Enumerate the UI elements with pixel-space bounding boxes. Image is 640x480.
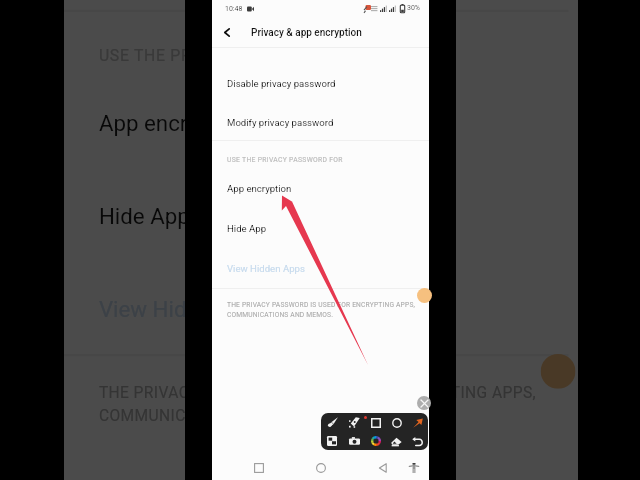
- button[interactable]: Hide App: [212, 208, 429, 248]
- button[interactable]: View Hidden Apps: [212, 248, 429, 288]
- button[interactable]: App encryption: [64, 75, 568, 168]
- button[interactable]: Recents: [254, 463, 264, 473]
- button[interactable]: Back: [214, 18, 240, 47]
- button[interactable]: Screenshot: [343, 432, 365, 450]
- button[interactable]: Rectangle: [365, 413, 386, 432]
- button[interactable]: Colour: [365, 432, 386, 450]
- staticText: 30%: [407, 4, 420, 12]
- staticText: Privacy & app encryption: [251, 27, 362, 39]
- staticText: Hide App: [99, 203, 192, 228]
- staticText: App encryption: [227, 183, 292, 194]
- button[interactable]: Modify privacy password: [212, 102, 429, 142]
- button[interactable]: View Hidden Apps: [64, 261, 568, 354]
- staticText: View Hidden Apps: [99, 296, 280, 321]
- button[interactable]: Arrow: [407, 413, 428, 432]
- button[interactable]: Circle: [386, 413, 407, 432]
- button[interactable]: Floating assistant: [417, 288, 432, 303]
- staticText: Disable privacy password: [227, 78, 336, 89]
- button[interactable]: Hide App: [64, 168, 568, 261]
- button[interactable]: Highlighter: [343, 413, 365, 432]
- button[interactable]: Floating assistant: [541, 354, 575, 389]
- staticText: Hide App: [227, 223, 267, 234]
- staticText: THE PRIVACY PASSWORD IS USED FOR ENCRYPT…: [99, 384, 538, 424]
- staticText: THE PRIVACY PASSWORD IS USED FOR ENCRYPT…: [227, 301, 416, 318]
- button[interactable]: Home: [316, 463, 326, 473]
- button[interactable]: App encryption: [212, 168, 429, 208]
- button[interactable]: Undo: [407, 432, 428, 450]
- staticText: 10:48: [225, 5, 243, 13]
- button[interactable]: Close toolbar: [417, 396, 431, 410]
- button[interactable]: Modify privacy password: [64, 0, 568, 14]
- staticText: View Hidden Apps: [227, 263, 305, 274]
- button[interactable]: Eraser: [386, 432, 407, 450]
- staticText: USE THE PRIVACY PASSWORD FOR: [99, 47, 369, 66]
- staticText: App encryption: [99, 110, 250, 135]
- staticText: USE THE PRIVACY PASSWORD FOR: [227, 156, 343, 164]
- staticText: Modify privacy password: [227, 117, 334, 128]
- button[interactable]: Back: [378, 463, 388, 473]
- button[interactable]: Brush: [321, 413, 343, 432]
- button[interactable]: Mosaic: [321, 432, 343, 450]
- button[interactable]: Accessibility: [409, 463, 419, 473]
- button[interactable]: Disable privacy password: [212, 63, 429, 103]
